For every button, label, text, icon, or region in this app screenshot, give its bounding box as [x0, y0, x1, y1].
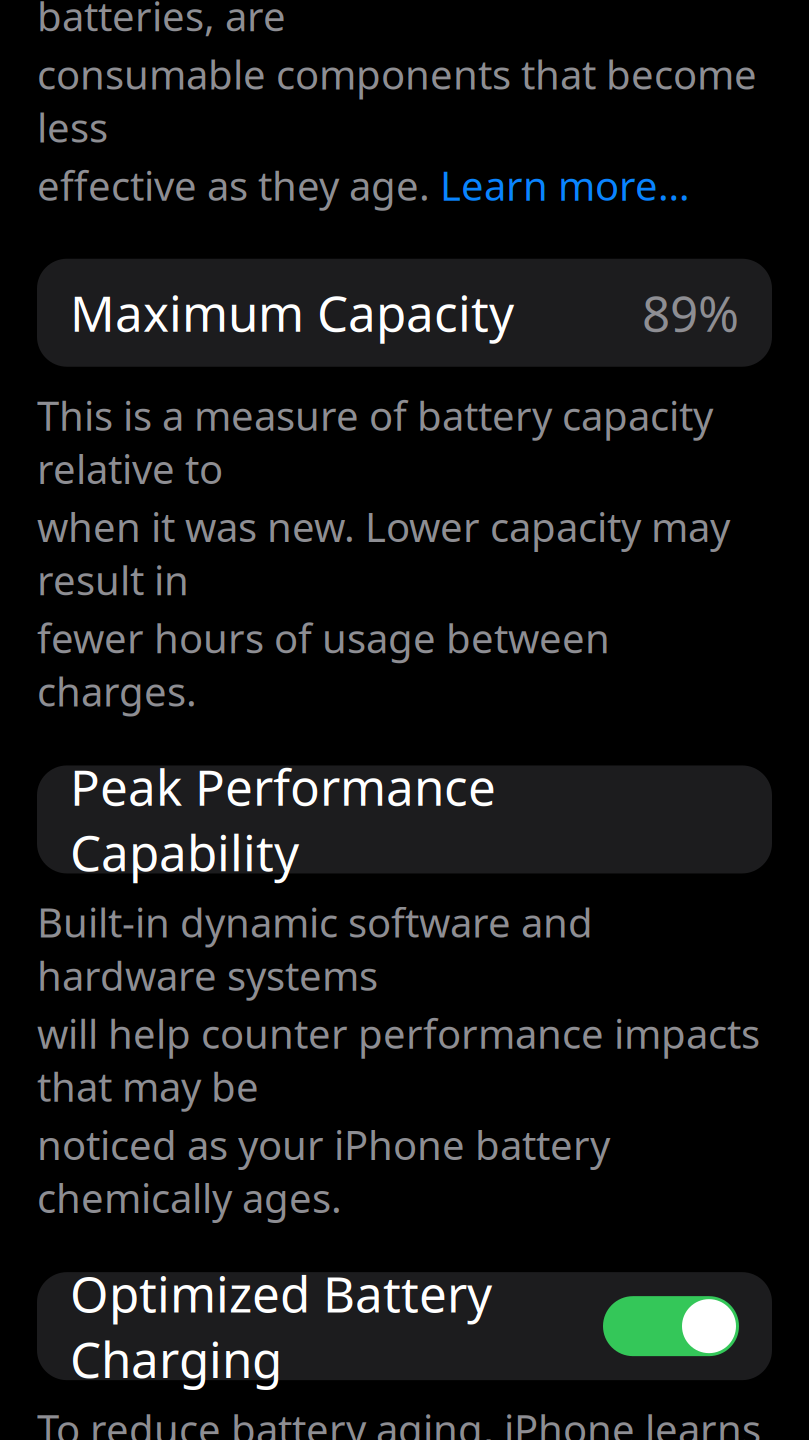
staticText: Phone batteries, like all rechargeable b…: [37, 0, 731, 42]
staticText: 89%: [642, 280, 739, 345]
staticText: when it was new. Lower capacity may resu…: [37, 500, 730, 606]
staticText: Learn more…: [440, 159, 690, 212]
staticText: will help counter performance impacts th…: [37, 1007, 760, 1113]
staticText: Optimized Battery Charging: [70, 1261, 492, 1392]
staticText: consumable components that become less: [37, 47, 757, 154]
staticText: noticed as your iPhone battery chemicall…: [37, 1118, 610, 1224]
staticText: Built-in dynamic software and hardware s…: [37, 895, 593, 1002]
button[interactable]: Maximum Capacity: [37, 259, 772, 367]
button[interactable]: Optimized Battery Charging: [37, 1272, 772, 1380]
button[interactable]: Peak Performance Capability: [37, 765, 772, 873]
staticText: This is a measure of battery capacity re…: [37, 389, 713, 495]
staticText: fewer hours of usage between charges.: [37, 611, 610, 717]
staticText: effective as they age.: [37, 159, 440, 212]
staticText: To reduce battery aging, iPhone learns f…: [37, 1402, 761, 1440]
staticText: Maximum Capacity: [70, 280, 514, 345]
staticText: Peak Performance Capability: [70, 754, 496, 885]
